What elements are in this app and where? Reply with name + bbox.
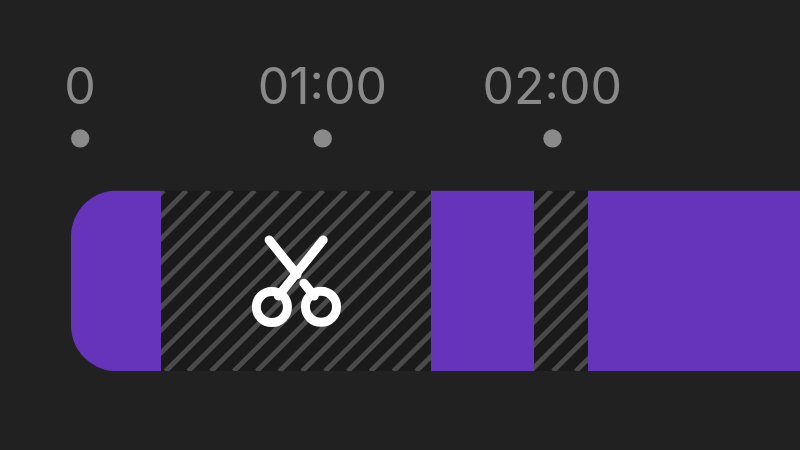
button[interactable]: Trim timeline [0, 0, 800, 450]
